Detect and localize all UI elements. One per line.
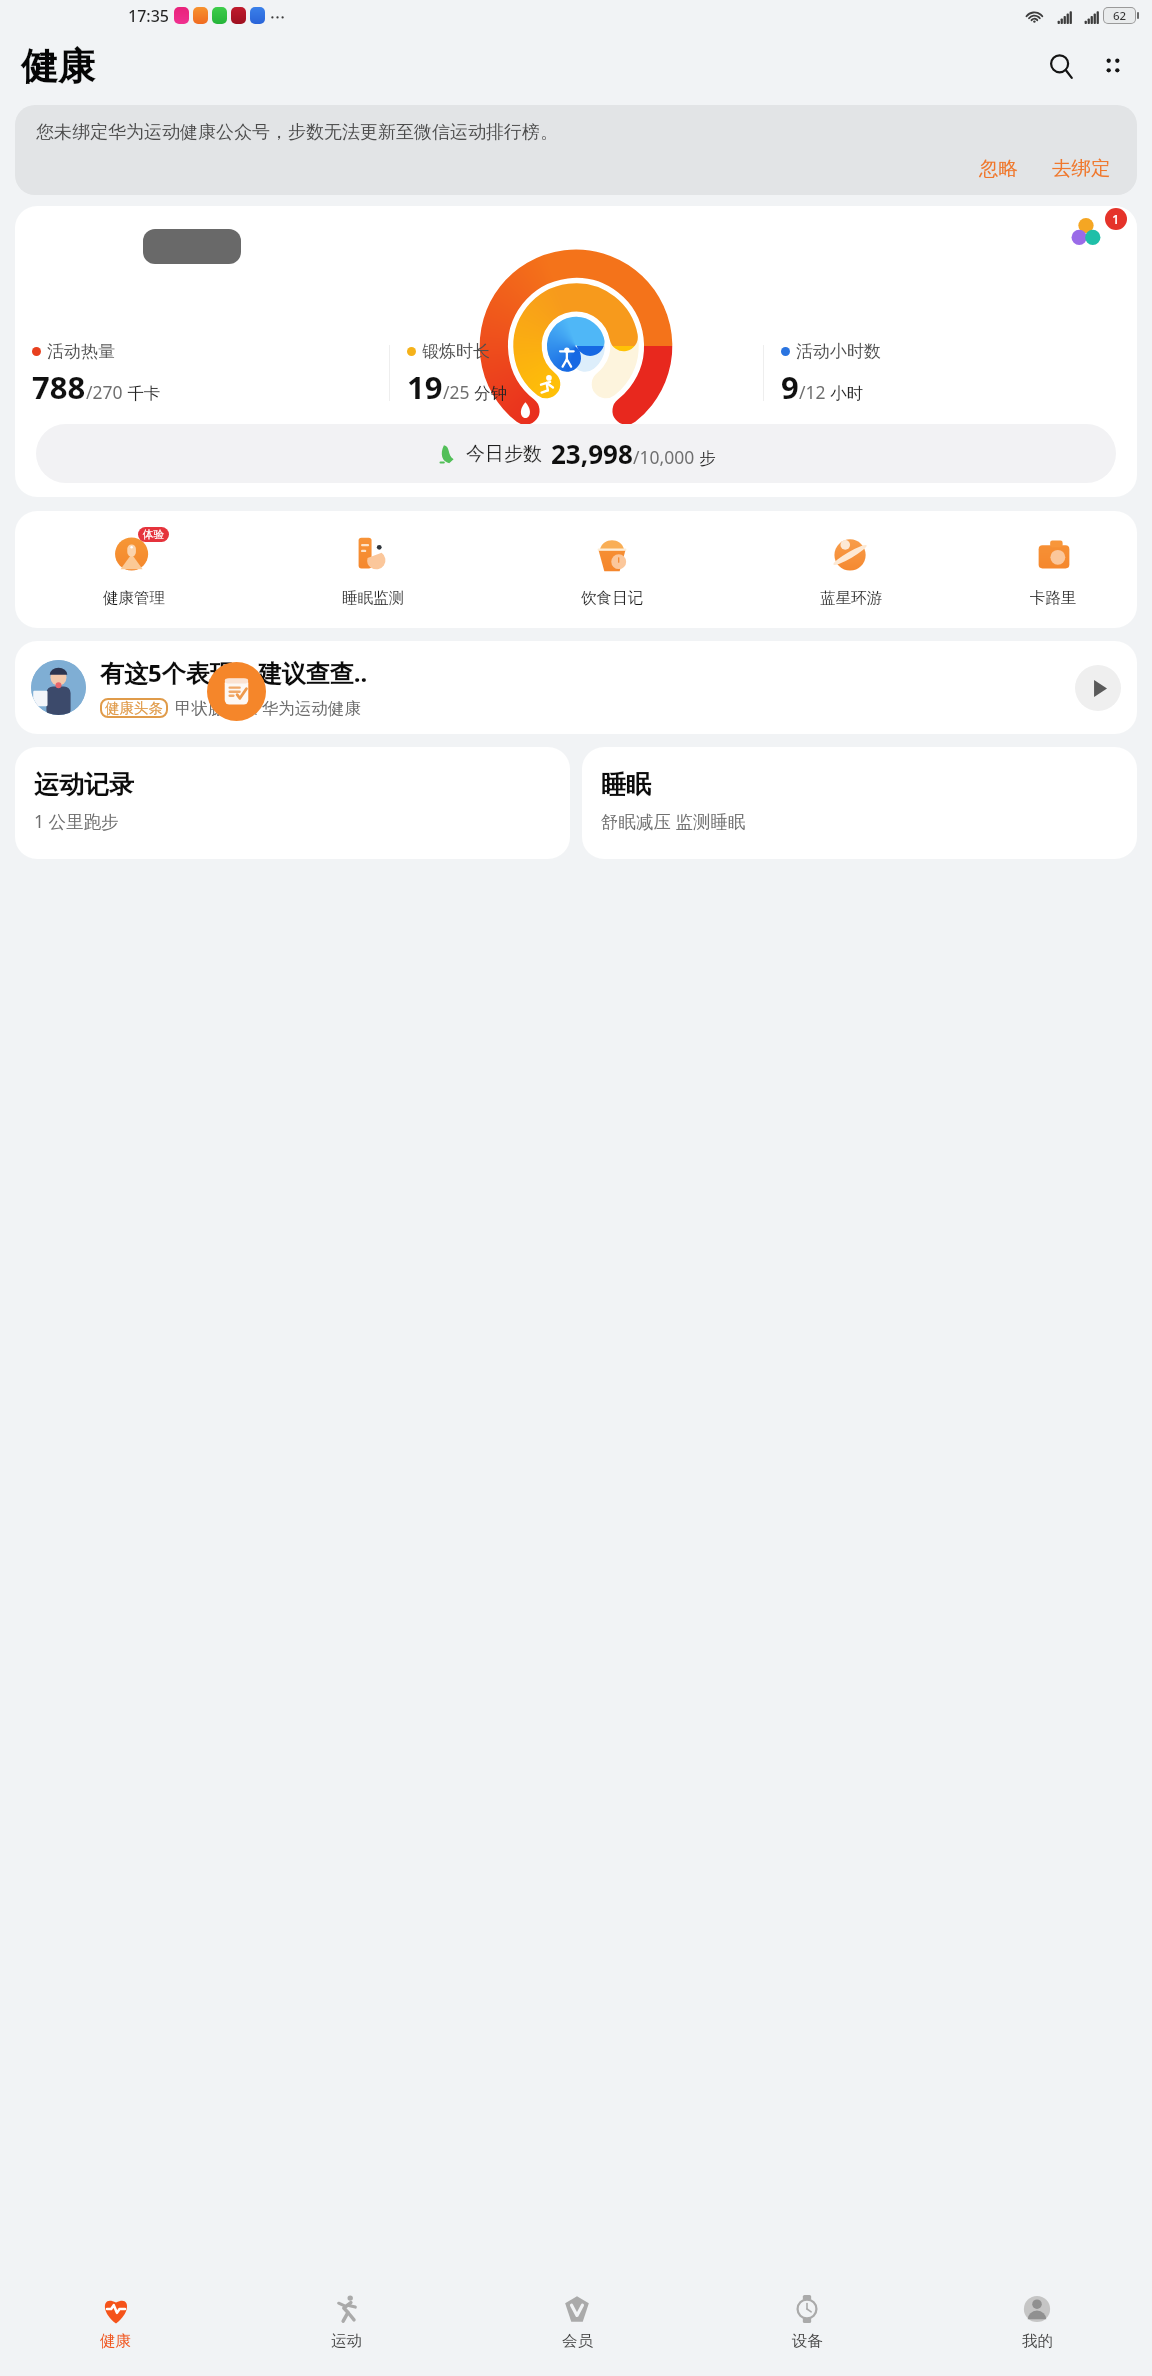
staticText: 788 — [32, 366, 86, 408]
staticText: 步 — [695, 446, 716, 469]
staticText: /12 — [799, 380, 826, 404]
button[interactable]: 饮食日记 — [492, 528, 731, 608]
staticText: 舒眠减压 监测睡眠 — [601, 809, 746, 833]
staticText: 1 — [1112, 210, 1120, 228]
staticText: 蓝星环游 — [820, 588, 882, 608]
button[interactable]: 活动热量 — [15, 206, 1137, 497]
staticText: 饮食日记 — [581, 588, 643, 608]
staticText: 您未绑定华为运动健康公众号，步数无法更新至微信运动排行榜。 — [36, 121, 558, 144]
staticText: 会员 — [562, 2331, 593, 2351]
staticText: 甲状腺健康 华为运动健康 — [175, 696, 361, 719]
staticText: 设备 — [792, 2331, 823, 2351]
staticText: 卡路里 — [1030, 588, 1077, 608]
staticText: 62 — [1113, 8, 1127, 23]
button[interactable]: 忽略 — [973, 153, 1024, 184]
button[interactable]: 我的 — [922, 2280, 1152, 2351]
staticText: 忽略 — [979, 156, 1018, 181]
staticText: 健康头条 — [105, 699, 163, 717]
staticText: 我的 — [1022, 2331, 1053, 2351]
staticText: 睡眠监测 — [342, 588, 404, 608]
button[interactable]: 蓝星环游 — [731, 528, 970, 608]
button[interactable]: 体验 — [15, 528, 253, 608]
staticText: 睡眠 — [601, 769, 651, 800]
button[interactable]: 您未绑定华为运动健康公众号，步数无法更新至微信运动排行榜。 — [15, 105, 1137, 195]
button[interactable]: 运动 — [231, 2280, 462, 2351]
staticText: 今日步数 — [466, 442, 542, 466]
staticText: 小时 — [826, 381, 864, 404]
staticText: 活动小时数 — [796, 341, 881, 362]
button[interactable]: 会员 — [462, 2280, 692, 2351]
staticText: 健康 — [21, 43, 95, 90]
button[interactable]: 健康 — [0, 2280, 231, 2351]
staticText: 体验 — [143, 528, 164, 541]
staticText: 19 — [407, 366, 443, 408]
staticText: 有这5个表现，建议查查.. — [100, 656, 368, 689]
staticText: 锻炼时长 — [422, 341, 490, 362]
staticText: 23,998 — [551, 436, 633, 471]
button[interactable]: 卡路里 — [970, 528, 1137, 608]
staticText: 1 公里跑步 — [34, 809, 119, 833]
button[interactable]: Achievements — [1045, 206, 1137, 258]
staticText: 健康管理 — [103, 588, 165, 608]
button[interactable]: 睡眠监测 — [253, 528, 492, 608]
button[interactable]: 设备 — [692, 2280, 922, 2351]
staticText: 健康 — [100, 2331, 131, 2351]
staticText: 分钟 — [470, 381, 508, 404]
staticText: /25 — [443, 380, 470, 404]
button[interactable]: 今日步数 — [36, 424, 1116, 483]
button[interactable]: 去绑定 — [1046, 153, 1117, 184]
button[interactable]: More options — [1090, 43, 1136, 89]
staticText: /10,000 — [633, 445, 695, 469]
staticText: 运动 — [331, 2331, 362, 2351]
button[interactable]: Add record — [207, 662, 266, 721]
staticText: 运动记录 — [34, 769, 134, 800]
button[interactable]: 有这5个表现，建议查查.. — [15, 641, 1137, 734]
staticText: 千卡 — [123, 381, 161, 404]
staticText: /270 — [86, 380, 123, 404]
staticText: 活动热量 — [47, 341, 115, 362]
button[interactable]: Search — [1038, 43, 1084, 89]
staticText: 去绑定 — [1052, 156, 1111, 181]
button[interactable]: 睡眠 — [582, 747, 1137, 859]
staticText: 17:35 — [128, 5, 169, 27]
button[interactable]: Play — [1075, 665, 1121, 711]
staticText: 9 — [781, 366, 799, 408]
button[interactable]: 运动记录 — [15, 747, 570, 859]
